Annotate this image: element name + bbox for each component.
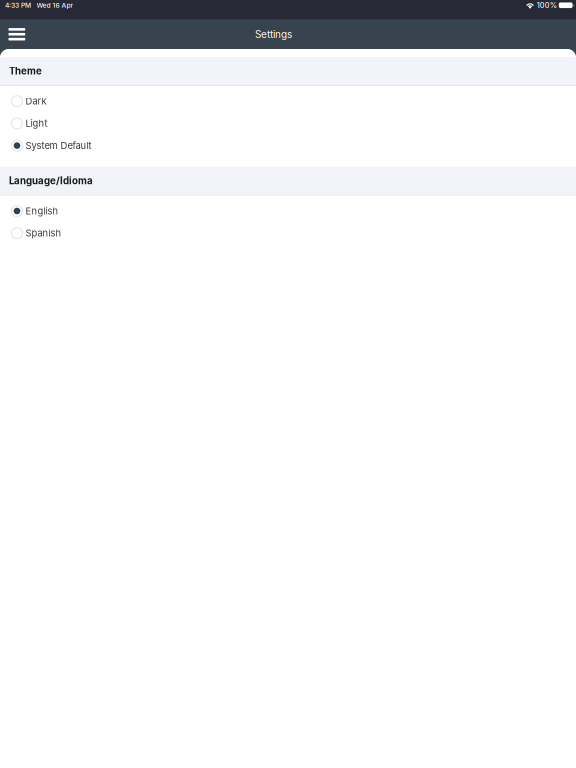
- button[interactable]: Menu: [1, 21, 32, 47]
- staticText: Wed 16 Apr: [36, 1, 73, 9]
- button[interactable]: Spanish: [0, 222, 576, 244]
- staticText: Light: [25, 118, 47, 129]
- staticText: 4:33 PM: [5, 1, 31, 9]
- button[interactable]: English: [0, 200, 576, 222]
- staticText: Theme: [9, 65, 42, 77]
- staticText: 100%: [537, 1, 557, 10]
- staticText: Settings: [255, 28, 292, 40]
- button[interactable]: Dark: [0, 90, 576, 112]
- staticText: Dark: [25, 96, 46, 107]
- button[interactable]: Light: [0, 112, 576, 134]
- button[interactable]: System Default: [0, 134, 576, 157]
- staticText: Spanish: [25, 228, 61, 239]
- staticText: System Default: [25, 140, 91, 151]
- staticText: English: [25, 205, 58, 217]
- staticText: Language/Idioma: [9, 175, 93, 187]
